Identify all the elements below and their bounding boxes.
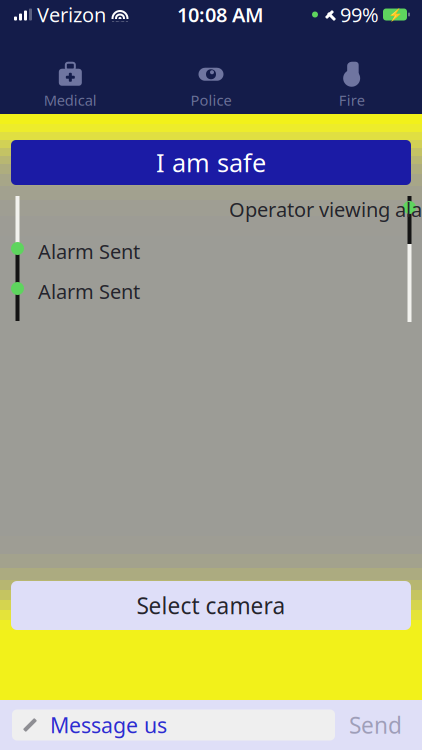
staticText: Medical — [44, 90, 97, 110]
staticText: 99% — [340, 1, 379, 28]
staticText: ⚡ — [387, 8, 402, 21]
staticText: Select camera — [136, 590, 285, 620]
staticText: I am safe — [156, 146, 266, 179]
button[interactable]: Fire — [281, 59, 422, 111]
staticText: Alarm Sent — [38, 278, 140, 305]
button[interactable]: Medical — [0, 59, 141, 111]
staticText: Operator viewing alarm — [229, 196, 422, 223]
staticText: Fire — [339, 90, 365, 110]
staticText: 10:08 AM — [177, 1, 264, 28]
button[interactable]: I am safe — [11, 140, 411, 185]
staticText: Send — [349, 710, 402, 740]
button[interactable]: Police — [141, 59, 281, 111]
button[interactable]: Send — [335, 705, 416, 745]
button[interactable]: Select camera — [11, 581, 411, 630]
staticText: Alarm Sent — [38, 238, 140, 265]
staticText: Verizon — [37, 1, 106, 28]
button[interactable]: Message us — [12, 709, 335, 740]
staticText: Police — [190, 90, 231, 110]
staticText: Message us — [50, 711, 167, 739]
